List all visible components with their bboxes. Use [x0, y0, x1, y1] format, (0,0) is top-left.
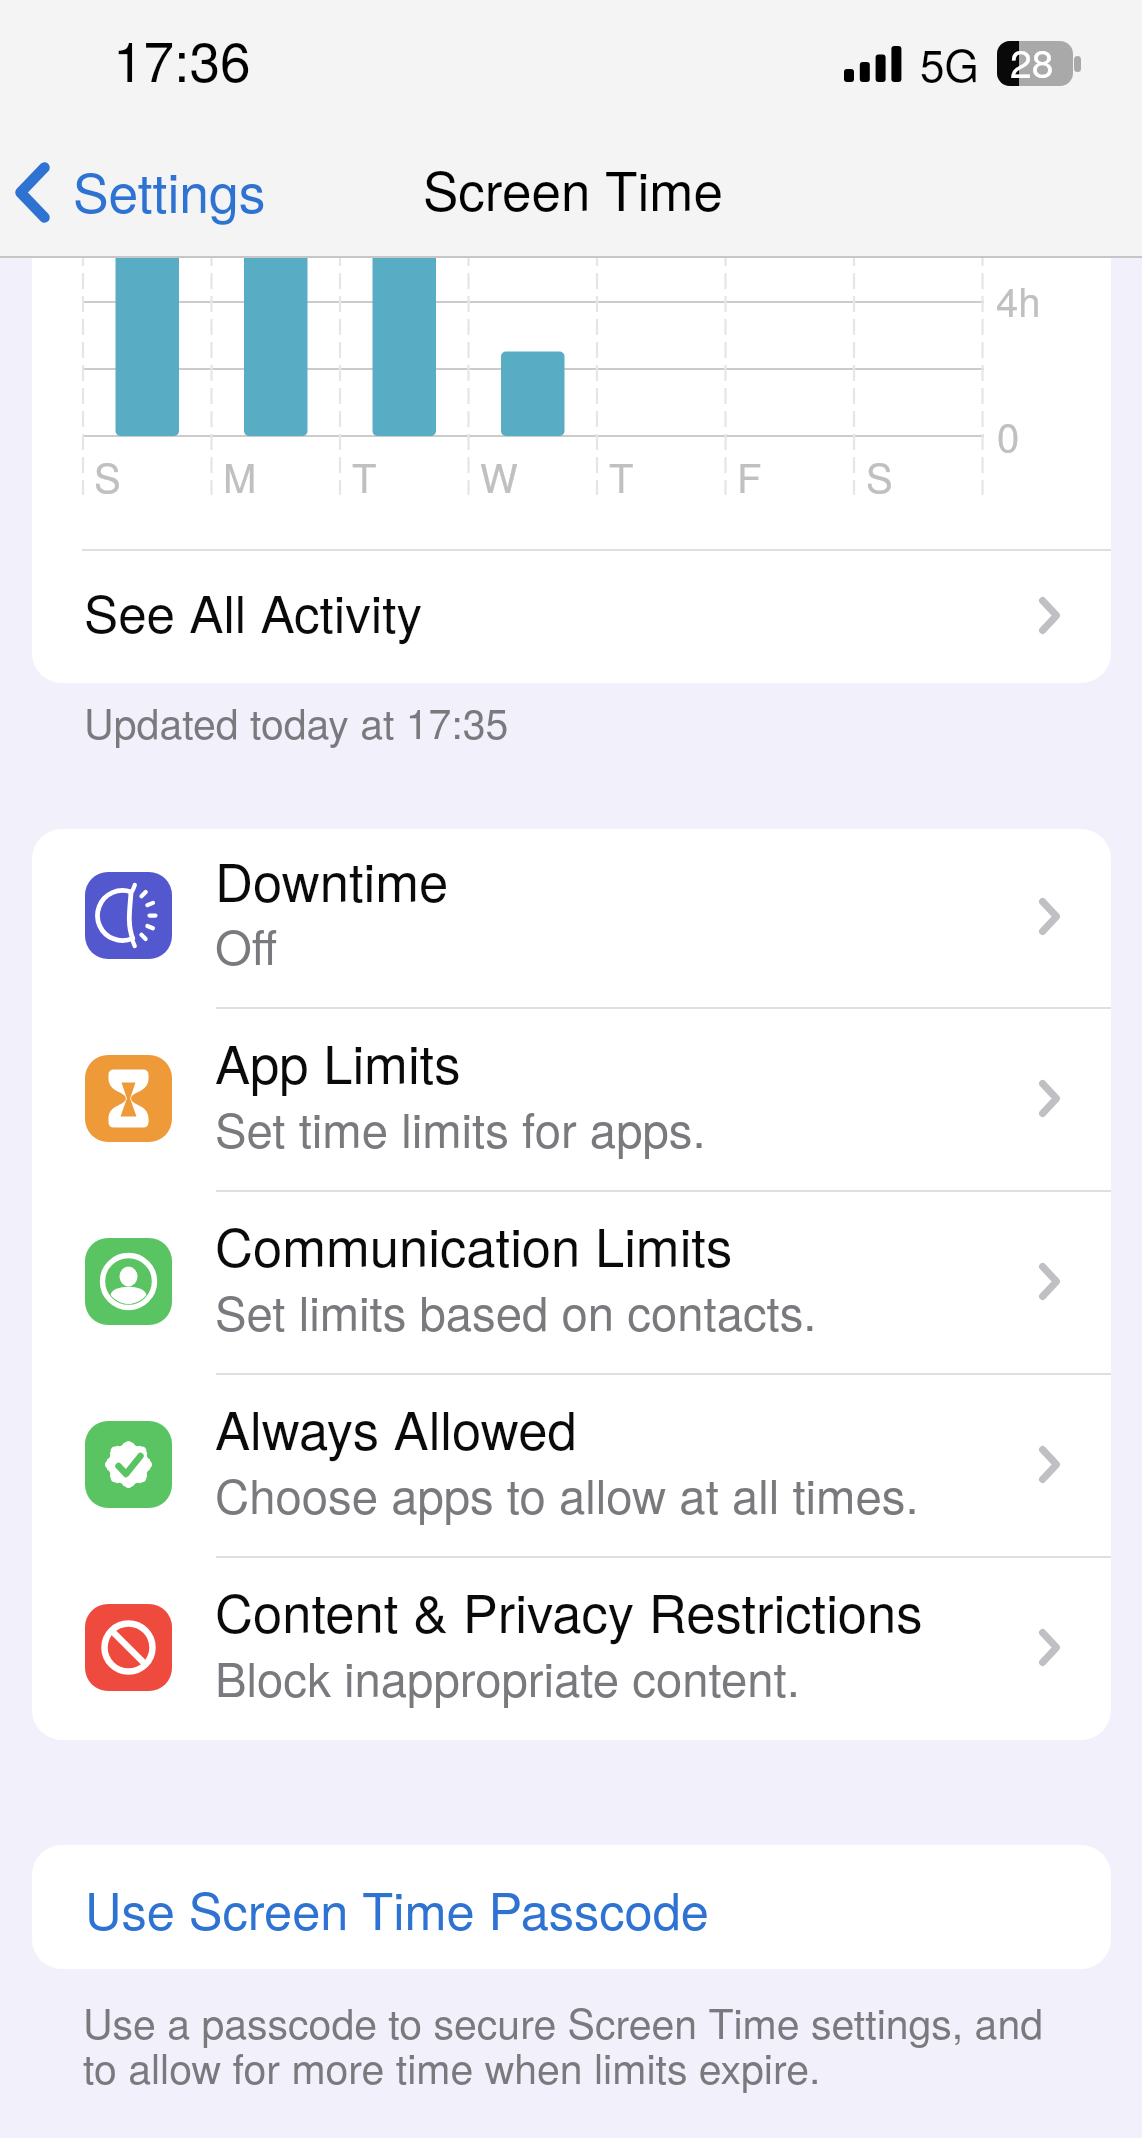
staticText: 0 [997, 406, 1020, 463]
staticText: Block inappropriate content. [215, 1643, 800, 1711]
staticText: M [223, 447, 257, 504]
button[interactable]: Always Allowed [32, 1373, 1111, 1556]
staticText: W [480, 447, 518, 504]
staticText: F [737, 447, 762, 504]
staticText: 17:36 [113, 19, 251, 98]
button[interactable]: Downtime [32, 829, 1111, 1007]
staticText: 28 [1010, 33, 1054, 89]
staticText: 4h [996, 271, 1041, 328]
button[interactable]: Content & Privacy Restrictions [32, 1556, 1111, 1740]
staticText: Always Allowed [215, 1390, 577, 1465]
staticText: 5G [920, 31, 979, 94]
staticText: Downtime [215, 842, 449, 917]
staticText: Settings [73, 152, 266, 228]
staticText: Set time limits for apps. [215, 1094, 706, 1162]
staticText: Communication Limits [215, 1207, 733, 1282]
staticText: S [94, 447, 121, 504]
staticText: Content & Privacy Restrictions [215, 1573, 923, 1648]
staticText: Choose apps to allow at all times. [215, 1460, 919, 1528]
staticText: Screen Time [423, 150, 723, 226]
staticText: See All Activity [84, 574, 422, 647]
staticText: Set limits based on contacts. [215, 1277, 817, 1345]
button[interactable]: See All Activity [32, 550, 1111, 683]
button[interactable]: Communication Limits [32, 1190, 1111, 1373]
staticText: T [352, 447, 377, 504]
staticText: S [866, 447, 893, 504]
staticText: Use Screen Time Passcode [85, 1872, 709, 1944]
button[interactable]: Settings [8, 132, 288, 244]
staticText: Updated today at 17:35 [84, 692, 509, 751]
button[interactable]: App Limits [32, 1007, 1111, 1190]
staticText: to allow for more time when limits expir… [83, 2037, 821, 2096]
staticText: Off [215, 911, 278, 979]
staticText: T [609, 447, 634, 504]
button[interactable]: Use Screen Time Passcode [32, 1845, 1111, 1969]
staticText: App Limits [215, 1024, 461, 1099]
staticText: Use a passcode to secure Screen Time set… [83, 1992, 1044, 2051]
